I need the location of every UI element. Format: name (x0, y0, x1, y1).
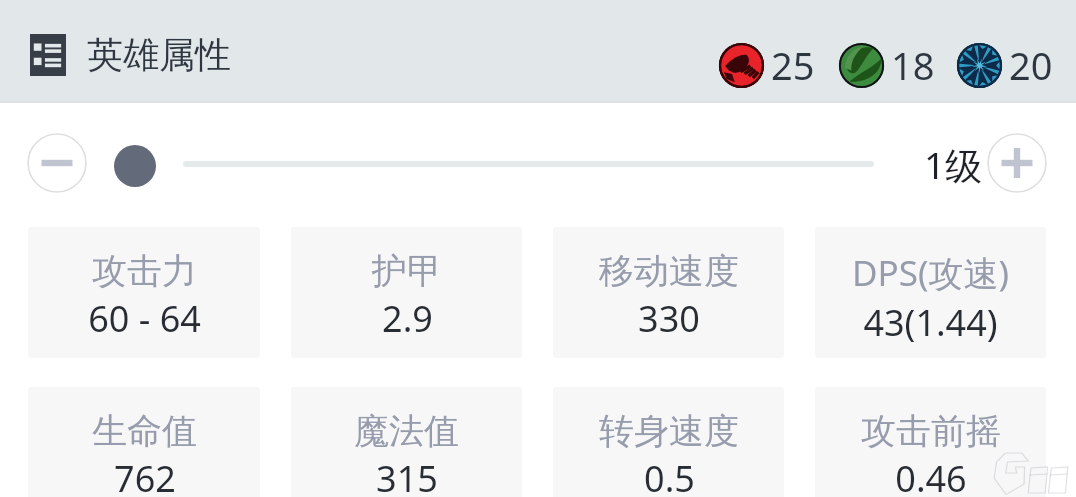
staticText: 18 (891, 39, 935, 91)
staticText: 移动速度 (599, 249, 739, 293)
button[interactable]: Attribute 20 (957, 39, 1053, 91)
staticText: 25 (771, 39, 815, 91)
button[interactable]: 护甲 (291, 227, 522, 358)
button[interactable]: Level slider handle (114, 145, 156, 187)
button[interactable]: 攻击力 (28, 227, 260, 358)
staticText: 英雄属性 (87, 32, 231, 77)
staticText: 330 (638, 294, 700, 343)
staticText: 315 (376, 454, 438, 497)
button[interactable]: 生命值 (28, 387, 260, 497)
staticText: 43(1.44) (863, 298, 998, 347)
staticText: 0.46 (895, 454, 967, 497)
button[interactable]: 魔法值 (291, 387, 522, 497)
button[interactable]: 攻击前摇 (815, 387, 1046, 497)
staticText: 生命值 (92, 409, 197, 453)
staticText: 攻击前摇 (861, 409, 1001, 453)
staticText: 0.5 (644, 454, 695, 497)
button[interactable]: DPS(攻速) (815, 227, 1046, 358)
staticText: 魔法值 (354, 409, 459, 453)
staticText: 60 - 64 (88, 294, 201, 343)
button[interactable]: 移动速度 (553, 227, 784, 358)
button[interactable]: Attribute 18 (839, 39, 935, 91)
button[interactable]: 转身速度 (553, 387, 784, 497)
staticText: 攻击力 (92, 249, 197, 293)
button[interactable]: Hero attributes (30, 34, 66, 76)
staticText: DPS(攻速) (852, 249, 1009, 297)
button[interactable]: Attribute 25 (719, 39, 815, 91)
staticText: 护甲 (372, 249, 442, 293)
button[interactable]: Decrease level (27, 133, 87, 193)
staticText: 20 (1009, 39, 1053, 91)
button[interactable]: Increase level (987, 133, 1047, 193)
staticText: 762 (114, 454, 176, 497)
staticText: 1级 (924, 139, 983, 190)
staticText: 转身速度 (599, 409, 739, 453)
staticText: 2.9 (382, 294, 433, 343)
